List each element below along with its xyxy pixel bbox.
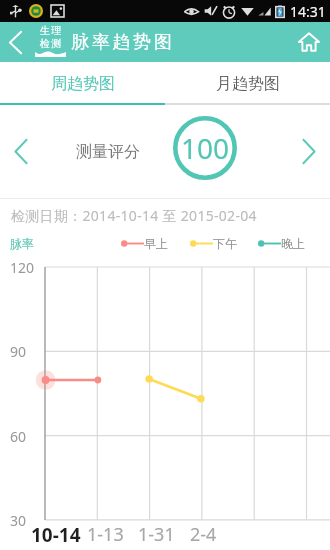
staticText: 10-14: [31, 522, 81, 548]
staticText: 下午: [213, 236, 237, 251]
staticText: 生理: [39, 24, 62, 37]
button[interactable]: 月趋势图: [165, 62, 330, 105]
staticText: 周趋势图: [51, 74, 115, 94]
button[interactable]: Previous period: [0, 105, 44, 198]
staticText: 月趋势图: [216, 74, 280, 94]
staticText: 脉率趋势图: [70, 31, 173, 54]
staticText: 早上: [144, 236, 168, 251]
staticText: 100: [181, 129, 230, 167]
staticText: 30: [10, 511, 27, 530]
button[interactable]: 周趋势图: [0, 62, 165, 105]
button[interactable]: Home: [288, 22, 330, 62]
staticText: 检测日期：2014-10-14 至 2015-02-04: [11, 206, 257, 225]
staticText: 120: [10, 258, 35, 277]
staticText: 90: [10, 342, 27, 361]
staticText: 1-31: [138, 522, 175, 547]
staticText: 2-4: [190, 522, 217, 547]
staticText: 晚上: [281, 236, 305, 251]
staticText: 1-13: [87, 522, 124, 547]
button[interactable]: Back: [0, 22, 34, 62]
staticText: 60: [10, 427, 27, 446]
staticText: 检测: [39, 37, 62, 50]
staticText: 14:31: [290, 2, 326, 21]
button[interactable]: Next period: [286, 105, 330, 198]
staticText: 测量评分: [76, 142, 140, 162]
staticText: 脉率: [10, 236, 34, 251]
